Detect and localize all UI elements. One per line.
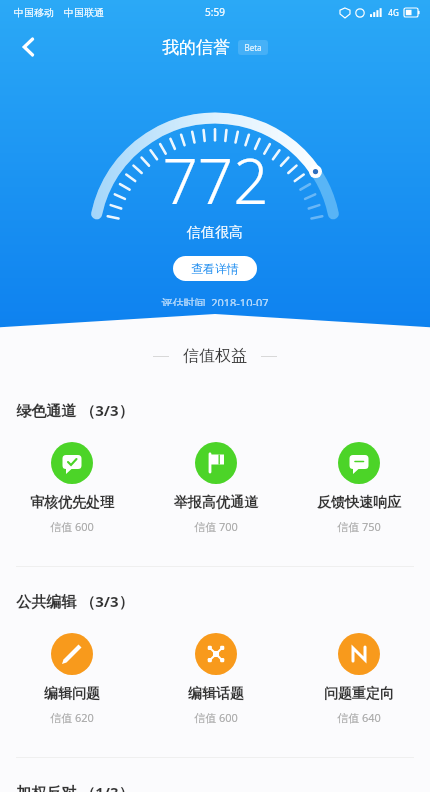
- staticText: 公共编辑 （3/3）: [16, 591, 134, 611]
- staticText: 查看详情: [191, 261, 239, 276]
- staticText: 中国移动: [14, 6, 54, 19]
- button[interactable]: 编辑话题: [144, 633, 287, 725]
- staticText: 中国联通: [64, 6, 104, 19]
- staticText: 4G: [388, 7, 399, 18]
- staticText: 加权反对 （1/3）: [16, 782, 134, 792]
- staticText: 评估时间 2018-10-07: [161, 295, 269, 306]
- staticText: 编辑话题: [188, 685, 244, 703]
- button[interactable]: 返回: [6, 24, 52, 70]
- button[interactable]: Beta: [244, 42, 262, 53]
- staticText: 问题重定向: [324, 685, 394, 703]
- staticText: 772: [162, 138, 269, 222]
- button[interactable]: 审核优先处理: [0, 442, 144, 534]
- button[interactable]: 查看详情: [173, 256, 257, 281]
- staticText: 信值 640: [337, 710, 381, 725]
- staticText: Beta: [244, 42, 262, 53]
- staticText: 绿色通道 （3/3）: [16, 400, 134, 420]
- staticText: 举报高优通道: [174, 494, 258, 512]
- staticText: 信值很高: [187, 224, 243, 242]
- staticText: 信值 620: [50, 710, 94, 725]
- button[interactable]: 反馈快速响应: [287, 442, 430, 534]
- staticText: 编辑问题: [44, 685, 100, 703]
- button[interactable]: 编辑问题: [0, 633, 144, 725]
- button[interactable]: 举报高优通道: [144, 442, 287, 534]
- staticText: 审核优先处理: [30, 494, 114, 512]
- staticText: 反馈快速响应: [317, 494, 401, 512]
- staticText: 信值 750: [337, 519, 381, 534]
- staticText: 5:59: [205, 5, 225, 19]
- button[interactable]: 问题重定向: [287, 633, 430, 725]
- staticText: 信值权益: [183, 346, 247, 366]
- staticText: 信值 600: [194, 710, 238, 725]
- staticText: 信值 600: [50, 519, 94, 534]
- staticText: 信值 700: [194, 519, 238, 534]
- staticText: 我的信誉: [162, 37, 230, 58]
